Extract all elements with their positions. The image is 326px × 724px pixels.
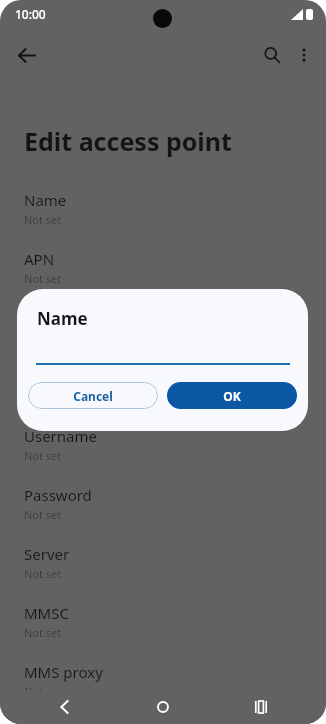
button[interactable]: Cancel <box>28 382 158 409</box>
staticText: Edit access point <box>24 124 232 158</box>
staticText: MMS proxy <box>24 662 103 682</box>
button[interactable]: MMS proxy <box>0 662 326 708</box>
staticText: Name <box>24 190 67 210</box>
staticText: Cancel <box>73 388 113 404</box>
button[interactable]: Server <box>0 544 326 590</box>
staticText: Not set <box>24 448 62 463</box>
button[interactable]: Search <box>256 42 288 68</box>
button[interactable]: Port <box>0 367 326 413</box>
staticText: Not set <box>24 684 62 699</box>
staticText: Not set <box>24 271 62 286</box>
staticText: MMSC <box>24 603 69 623</box>
button[interactable]: MMSC <box>0 603 326 649</box>
button[interactable]: Back <box>10 42 42 68</box>
staticText: Server <box>24 544 70 564</box>
staticText: Port <box>24 367 54 387</box>
button[interactable]: OK <box>167 382 297 409</box>
staticText: Not set <box>24 566 62 581</box>
staticText: Password <box>24 485 92 505</box>
staticText: Proxy <box>24 308 64 328</box>
button[interactable]: Name <box>0 190 326 236</box>
staticText: Name <box>37 307 88 330</box>
staticText: Username <box>24 426 97 446</box>
staticText: Not set <box>24 389 62 404</box>
staticText: 10:00 <box>15 6 46 22</box>
staticText: APN <box>24 249 55 269</box>
button[interactable]: Password <box>0 485 326 531</box>
button[interactable]: Username <box>0 426 326 472</box>
staticText: Not set <box>24 625 62 640</box>
button[interactable]: Recent apps <box>246 692 276 722</box>
staticText: Not set <box>24 507 62 522</box>
button[interactable]: Back <box>50 692 80 722</box>
staticText: Not set <box>24 212 62 227</box>
button[interactable]: More options <box>288 42 320 68</box>
button[interactable]: Home <box>148 692 178 722</box>
button[interactable]: APN <box>0 249 326 295</box>
staticText: OK <box>223 388 241 404</box>
button[interactable]: Proxy <box>0 308 326 354</box>
